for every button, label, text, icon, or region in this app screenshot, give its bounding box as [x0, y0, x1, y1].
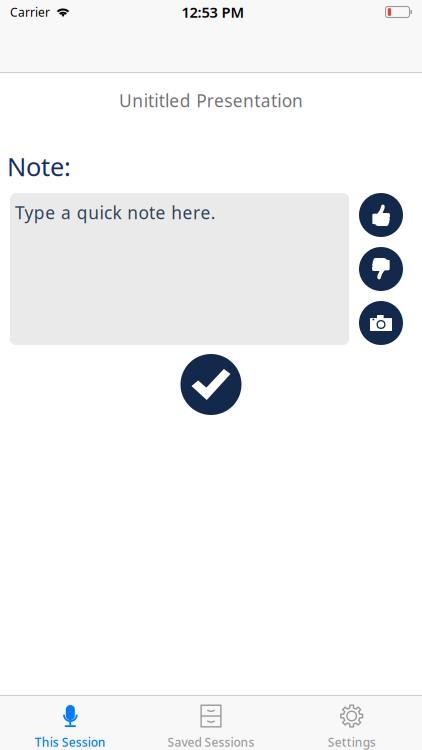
button[interactable]: Saved Sessions [141, 696, 281, 750]
button[interactable]: Dislike [359, 247, 403, 291]
button[interactable]: Settings [281, 696, 422, 750]
staticText: Note: [7, 149, 71, 183]
staticText: This Session [35, 734, 106, 750]
button[interactable]: Take photo [359, 301, 403, 345]
button[interactable]: Like [359, 193, 403, 237]
staticText: Unititled Presentation [119, 89, 303, 112]
button[interactable]: This Session [0, 696, 141, 750]
staticText: 12:53 PM [181, 2, 244, 22]
button[interactable]: Save note [180, 354, 241, 415]
staticText: Settings [328, 734, 376, 750]
staticText: Type a quick note here. [15, 201, 216, 224]
staticText: Carrier [10, 4, 50, 20]
staticText: Saved Sessions [167, 734, 254, 750]
